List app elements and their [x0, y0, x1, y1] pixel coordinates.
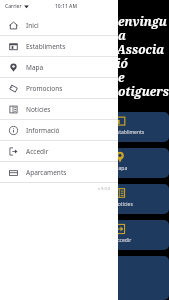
staticText: Promocions	[26, 84, 63, 93]
staticText: Informació	[26, 126, 60, 135]
button[interactable]: Establiments	[110, 112, 169, 142]
button[interactable]: Notícies	[110, 184, 169, 214]
staticText: 10:11 AM	[55, 3, 77, 10]
staticText: Establiments	[26, 42, 66, 51]
staticText: Inici	[26, 21, 39, 30]
button[interactable]: Establiments	[0, 36, 118, 56]
staticText: Benvingut a l'Associació de Botiguers	[110, 13, 169, 100]
staticText: Aparcaments	[26, 168, 67, 177]
button[interactable]: Inici	[0, 15, 118, 35]
staticText: Mapa	[26, 63, 44, 72]
button[interactable]: Informació	[0, 120, 118, 140]
button[interactable]: Notícies	[0, 99, 118, 119]
button[interactable]: Accedir	[0, 141, 118, 161]
staticText: Notícies	[26, 105, 51, 114]
button[interactable]: Promocions	[0, 78, 118, 98]
staticText: Accedir	[26, 147, 49, 156]
button[interactable]: Accedir	[110, 220, 169, 250]
staticText: Accedir	[114, 237, 132, 244]
staticText: v 9.0.0	[98, 186, 111, 191]
staticText: Notícies	[114, 201, 133, 208]
button[interactable]: Mapa	[0, 57, 118, 77]
staticText: Carrier	[5, 3, 22, 10]
staticText: Establiments	[114, 129, 145, 136]
staticText: Mapa	[114, 165, 128, 172]
button[interactable]: Aparcaments	[0, 162, 118, 182]
button[interactable]: More	[110, 256, 169, 300]
button[interactable]: Mapa	[110, 148, 169, 178]
